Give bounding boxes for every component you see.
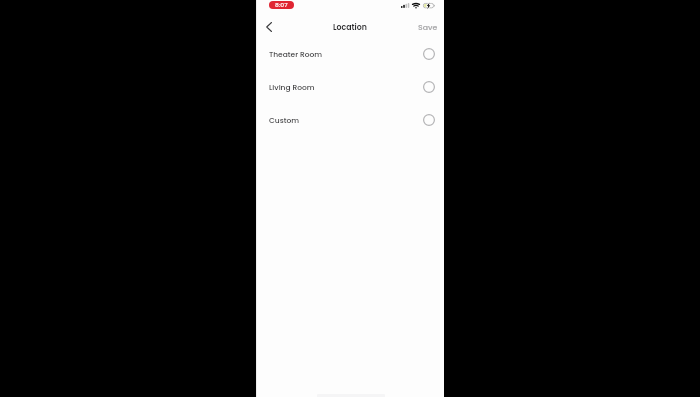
button[interactable]: Save [410,16,444,38]
button[interactable]: Back [258,16,280,38]
staticText: Location [333,22,367,33]
staticText: Living Room [269,82,315,92]
staticText: Theater Room [269,49,323,59]
staticText: Custom [269,115,300,125]
button[interactable]: Custom [256,105,444,135]
staticText: 8:07 [275,1,288,9]
button[interactable]: Theater Room [256,39,444,69]
staticText: Save [418,22,438,33]
button[interactable]: Living Room [256,72,444,102]
